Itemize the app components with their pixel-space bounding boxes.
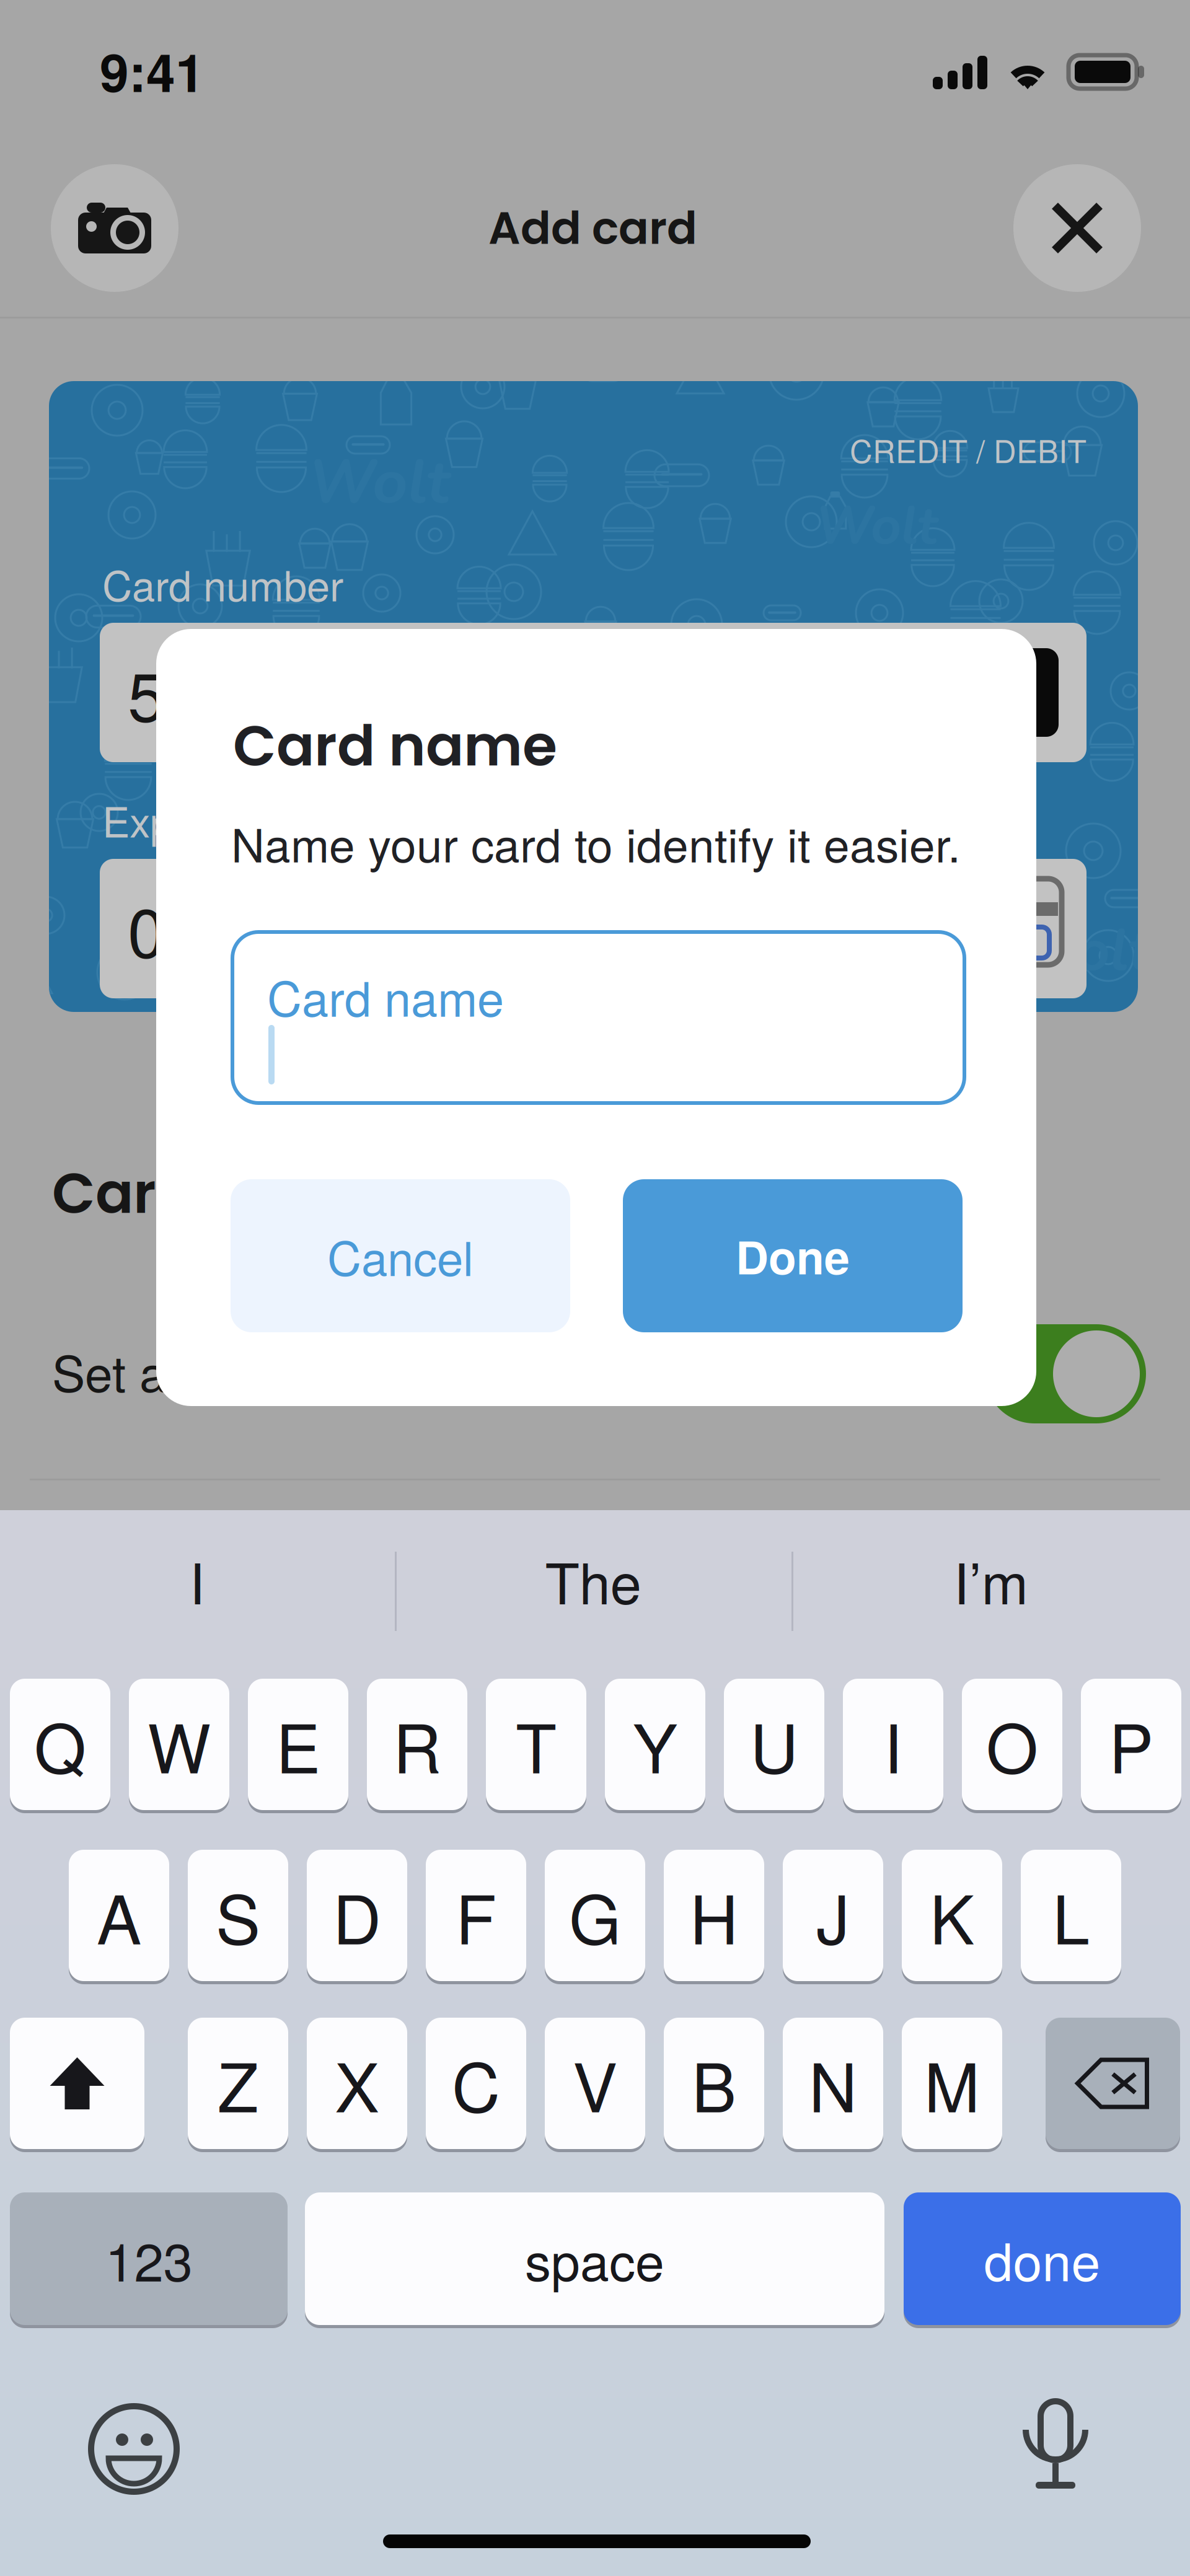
staticText: F	[456, 1868, 496, 1963]
staticText: Set as default	[52, 1335, 352, 1406]
staticText: X	[335, 2035, 379, 2131]
staticText: space	[525, 2221, 664, 2296]
staticText: I	[189, 1540, 205, 1620]
staticText: W	[148, 1696, 211, 1792]
staticText: Card name	[52, 1154, 376, 1232]
button[interactable]: V	[545, 2018, 645, 2149]
staticText: Card number	[102, 554, 343, 613]
button[interactable]: G	[545, 1850, 645, 1981]
staticText: R	[393, 1696, 441, 1792]
button[interactable]: Close	[1013, 164, 1141, 292]
staticText: Wolt	[1016, 912, 1150, 990]
staticText: H	[690, 1868, 738, 1963]
button[interactable]: Y	[605, 1679, 705, 1810]
staticText: The	[545, 1540, 641, 1620]
staticText: E	[276, 1696, 320, 1792]
staticText: T	[516, 1696, 557, 1792]
button[interactable]: T	[486, 1679, 586, 1810]
button[interactable]: Q	[10, 1679, 110, 1810]
button[interactable]: U	[724, 1679, 824, 1810]
staticText: Card name	[267, 962, 504, 1030]
button[interactable]: H	[664, 1850, 764, 1981]
staticText: 5	[128, 644, 165, 741]
staticText: C	[452, 2035, 500, 2131]
staticText: Done	[736, 1223, 850, 1288]
button[interactable]: Emoji	[91, 2406, 177, 2492]
button[interactable]: A	[69, 1850, 169, 1981]
button[interactable]: M	[902, 2018, 1002, 2149]
button[interactable]: N	[783, 2018, 883, 2149]
staticText: Expires	[102, 790, 239, 849]
button[interactable]: D	[307, 1850, 407, 1981]
staticText: 123	[105, 2221, 192, 2297]
staticText: J	[816, 1868, 850, 1963]
staticText: P	[1109, 1696, 1153, 1792]
button[interactable]: F	[426, 1850, 526, 1981]
staticText: U	[750, 1696, 798, 1792]
button[interactable]: K	[902, 1850, 1002, 1981]
button[interactable]: Z	[188, 2018, 288, 2149]
button[interactable]: Delete	[1046, 2018, 1180, 2149]
staticText: N	[809, 2035, 857, 2131]
button[interactable]: L	[1021, 1850, 1121, 1981]
button[interactable]: Done	[623, 1179, 963, 1332]
button[interactable]: Dictation	[1026, 2401, 1086, 2492]
button[interactable]: Set as default	[985, 1324, 1146, 1423]
staticText: S	[216, 1868, 260, 1963]
button[interactable]: P	[1081, 1679, 1181, 1810]
button[interactable]: done	[904, 2192, 1181, 2325]
staticText: D	[333, 1868, 381, 1963]
button[interactable]: J	[783, 1850, 883, 1981]
staticText: A	[97, 1868, 141, 1963]
button[interactable]: Scan card	[51, 164, 178, 292]
staticText: Y	[633, 1696, 677, 1792]
staticText: Add card	[488, 197, 697, 260]
staticText: Card name	[233, 706, 557, 785]
staticText: M	[924, 2035, 980, 2131]
staticText: V	[573, 2035, 617, 2131]
staticText: Q	[34, 1696, 86, 1792]
staticText: done	[984, 2221, 1100, 2296]
staticText: Name your card to identify it easier.	[231, 809, 961, 876]
staticText: B	[692, 2035, 736, 2131]
staticText: Cancel	[327, 1222, 474, 1289]
staticText: K	[930, 1868, 974, 1963]
button[interactable]: I	[843, 1679, 943, 1810]
button[interactable]: space	[305, 2192, 884, 2325]
button[interactable]: R	[367, 1679, 467, 1810]
button[interactable]: C	[426, 2018, 526, 2149]
button[interactable]: S	[188, 1850, 288, 1981]
button[interactable]: W	[129, 1679, 229, 1810]
button[interactable]: 123	[10, 2192, 288, 2325]
staticText: Z	[218, 2035, 258, 2131]
staticText: G	[569, 1868, 621, 1963]
button[interactable]: Shift	[10, 2018, 144, 2149]
staticText: 9:41	[100, 33, 205, 108]
button[interactable]: E	[248, 1679, 348, 1810]
button[interactable]: O	[962, 1679, 1062, 1810]
staticText: I	[884, 1696, 902, 1792]
staticText: L	[1052, 1868, 1090, 1963]
staticText: I’m	[954, 1540, 1029, 1620]
staticText: Wolt	[815, 490, 938, 562]
staticText: O	[986, 1696, 1038, 1792]
button[interactable]: X	[307, 2018, 407, 2149]
button[interactable]: Cancel	[231, 1179, 570, 1332]
staticText: 0	[128, 880, 165, 977]
staticText: CREDIT / DEBIT	[850, 427, 1086, 472]
button[interactable]: B	[664, 2018, 764, 2149]
